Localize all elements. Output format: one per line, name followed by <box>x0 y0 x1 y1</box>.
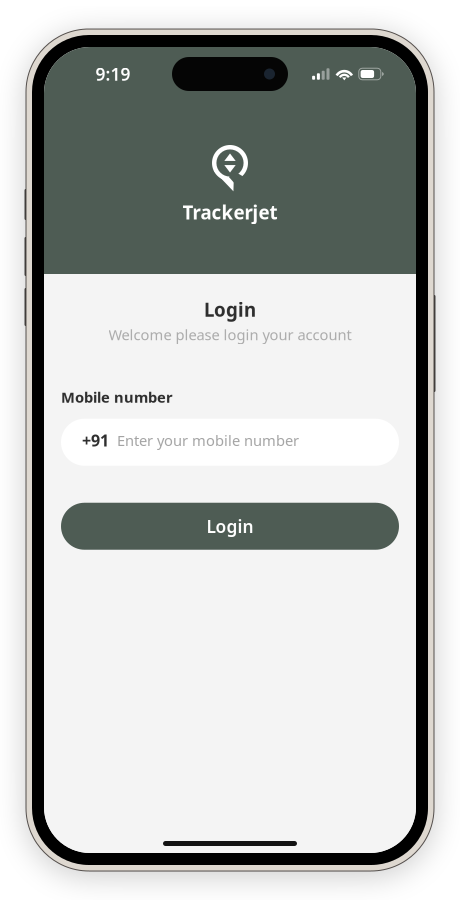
staticText: Enter your mobile number <box>117 430 299 450</box>
button[interactable]: Login <box>61 503 399 550</box>
staticText: 9:19 <box>95 62 130 85</box>
staticText: Login <box>204 297 256 322</box>
staticText: Login <box>206 515 253 538</box>
staticText: +91 <box>82 430 109 451</box>
staticText: Trackerjet <box>182 200 277 225</box>
staticText: Mobile number <box>61 387 173 407</box>
staticText: Welcome please login your account <box>108 325 351 344</box>
